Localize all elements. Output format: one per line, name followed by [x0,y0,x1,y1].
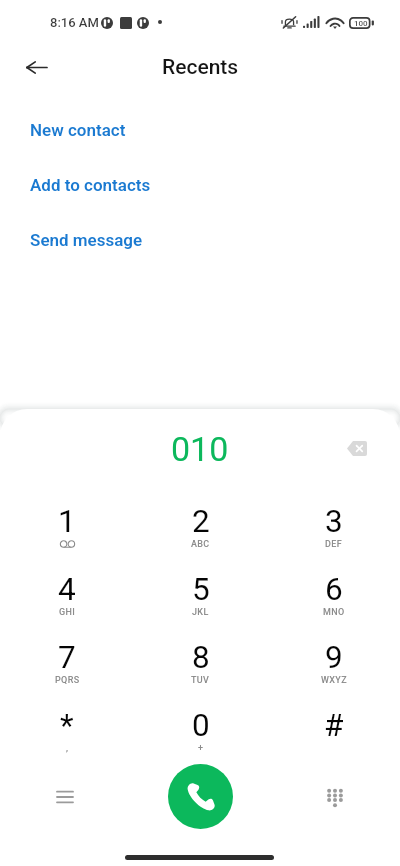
staticText: 9 [325,639,343,676]
staticText: PQRS [55,675,80,686]
button[interactable]: 5 [134,570,267,638]
button[interactable]: 9 [267,638,400,706]
staticText: GHI [59,607,76,618]
button[interactable]: 1 [0,502,134,570]
staticText: 100 [354,19,368,28]
button[interactable]: Call log [43,775,87,819]
staticText: + [198,743,204,754]
button[interactable]: Dialpad [313,775,357,819]
staticText: MNO [323,607,345,618]
button[interactable]: # [267,706,400,774]
staticText: TUV [191,675,210,686]
staticText: 1 [58,503,76,540]
staticText: JKL [192,607,209,618]
staticText: 7 [58,639,76,676]
button[interactable]: 4 [0,570,134,638]
button[interactable]: 6 [267,570,400,638]
staticText: 010 [171,429,229,469]
staticText: 5 [192,571,210,608]
staticText: ABC [191,539,210,550]
button[interactable]: 7 [0,638,134,706]
staticText: 3 [325,503,343,540]
button[interactable]: 8 [134,638,267,706]
staticText: Send message [30,230,143,250]
staticText: Recents [162,55,239,80]
staticText: 0 [192,707,210,744]
staticText: # [324,707,344,744]
staticText: 4 [58,571,76,608]
staticText: , [66,743,69,754]
button[interactable]: New contact [0,104,400,159]
button[interactable]: Call [168,764,233,829]
staticText: New contact [30,120,126,140]
button[interactable]: Backspace [335,426,379,470]
staticText: 6 [325,571,343,608]
staticText: 8 [192,639,210,676]
button[interactable]: * [0,706,134,774]
staticText: Add to contacts [30,175,151,195]
button[interactable]: 2 [134,502,267,570]
staticText: 2 [192,503,210,540]
button[interactable]: Send message [0,214,400,269]
button[interactable]: Back [16,47,56,87]
staticText: * [60,707,74,744]
button[interactable]: 0 [134,706,267,774]
button[interactable]: Add to contacts [0,159,400,214]
staticText: DEF [325,539,342,550]
staticText: WXYZ [321,675,347,686]
button[interactable]: 3 [267,502,400,570]
staticText: 8:16 AM [50,15,99,30]
